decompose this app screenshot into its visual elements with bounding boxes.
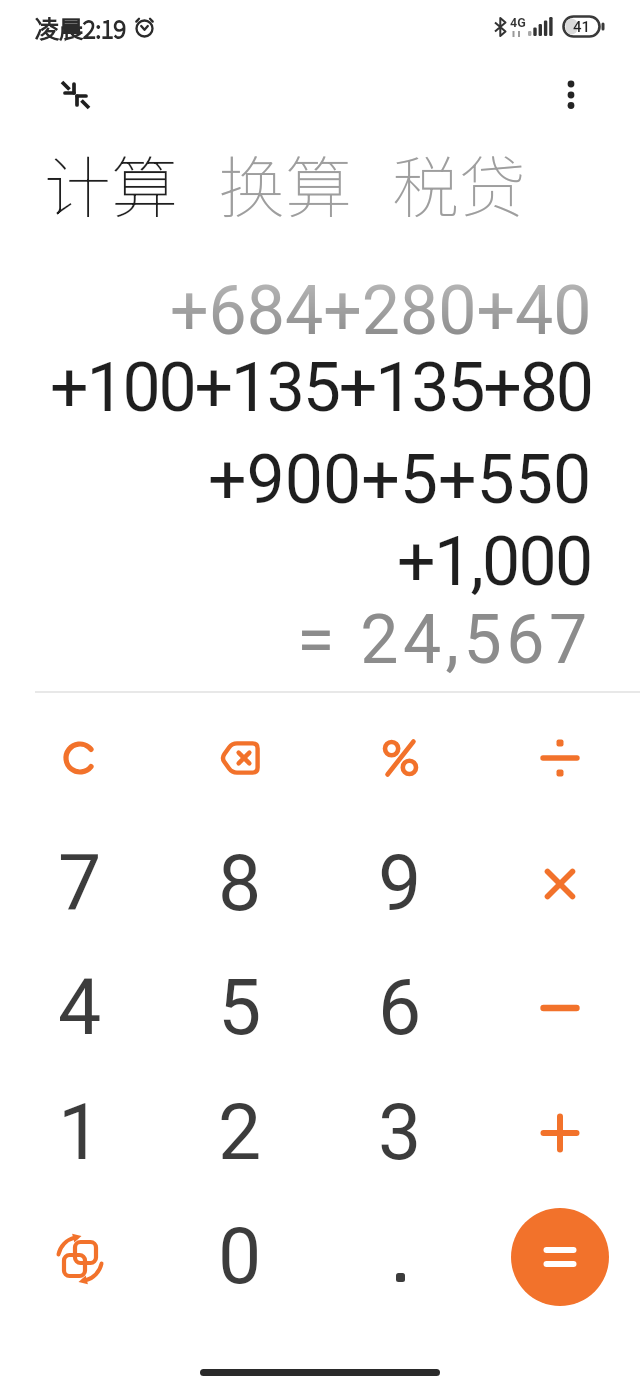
button[interactable]	[338, 1195, 462, 1319]
button[interactable]	[58, 80, 90, 112]
staticText: 8	[218, 839, 262, 929]
staticText: 5	[218, 963, 262, 1053]
staticText: 4G	[510, 15, 526, 30]
staticText: 41	[573, 18, 591, 36]
button[interactable]: +100+135+135+80	[50, 348, 592, 428]
staticText: 4	[58, 963, 102, 1053]
button[interactable]: 9	[338, 822, 462, 946]
staticText: 3	[378, 1088, 422, 1178]
button[interactable]: 5	[178, 946, 302, 1070]
button[interactable]: 换算	[218, 134, 352, 231]
button[interactable]	[498, 1195, 622, 1319]
button[interactable]	[498, 696, 622, 820]
button[interactable]: 7	[18, 822, 142, 946]
button[interactable]: +1,000	[397, 522, 592, 602]
button[interactable]: 计算	[44, 134, 178, 231]
staticText: 6	[378, 963, 422, 1053]
button[interactable]	[557, 78, 585, 106]
staticText: 凌晨2:19	[35, 10, 127, 45]
staticText: 凌晨2:19	[35, 10, 127, 45]
staticText: 2	[218, 1088, 262, 1178]
button[interactable]: 4	[18, 946, 142, 1070]
button[interactable]: = 24,567	[297, 600, 592, 680]
button[interactable]	[498, 822, 622, 946]
staticText: 7	[58, 839, 102, 929]
button[interactable]: +900+5+550	[208, 440, 592, 520]
button[interactable]	[18, 1195, 142, 1319]
staticText: 0	[218, 1212, 262, 1302]
staticText: 9	[378, 839, 422, 929]
button[interactable]: 3	[338, 1071, 462, 1195]
button[interactable]	[498, 946, 622, 1070]
button[interactable]: +684+280+40	[170, 271, 592, 351]
button[interactable]: 6	[338, 946, 462, 1070]
button[interactable]	[338, 696, 462, 820]
button[interactable]	[178, 696, 302, 820]
staticText: 1	[58, 1088, 102, 1178]
button[interactable]	[18, 696, 142, 820]
button[interactable]: 1	[18, 1071, 142, 1195]
button[interactable]	[498, 1071, 622, 1195]
button[interactable]: 税贷	[392, 134, 526, 231]
button[interactable]: 8	[178, 822, 302, 946]
button[interactable]: 0	[178, 1195, 302, 1319]
button[interactable]: 2	[178, 1071, 302, 1195]
